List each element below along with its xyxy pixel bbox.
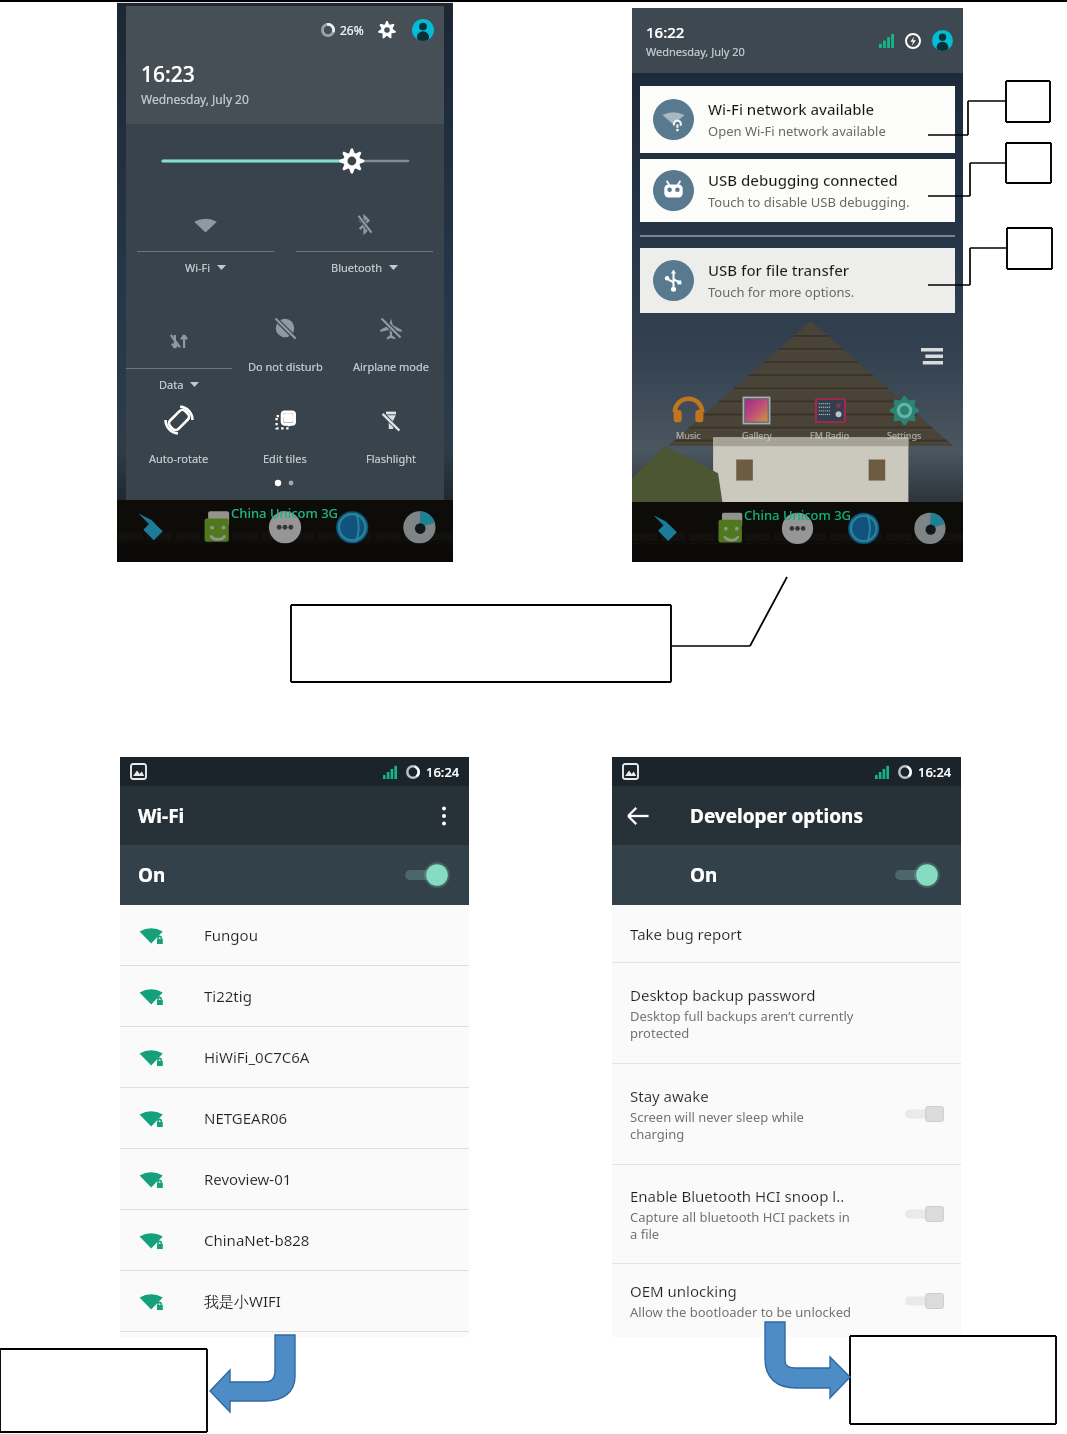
staticText: Take bug report: [630, 924, 742, 944]
staticText: Stay awake: [630, 1086, 709, 1106]
button[interactable]: Stay awake: [612, 1064, 961, 1164]
button[interactable]: Messaging: [185, 500, 252, 562]
button[interactable]: Back: [620, 798, 656, 834]
staticText: Wi-Fi: [185, 260, 211, 275]
staticText: Gallery: [742, 429, 772, 441]
button[interactable]: [895, 863, 939, 887]
button[interactable]: Edit tiles: [232, 397, 338, 489]
button[interactable]: Enable Bluetooth HCI snoop l..: [612, 1165, 961, 1263]
button[interactable]: More options: [425, 797, 463, 835]
button[interactable]: Stay awake toggle: [905, 1103, 945, 1125]
button[interactable]: Take bug report: [612, 905, 961, 962]
button[interactable]: Browser: [319, 500, 386, 562]
staticText: Screen will never sleep while charging: [630, 1108, 804, 1143]
staticText: Desktop backup password: [630, 985, 816, 1005]
button[interactable]: Music: [673, 395, 704, 441]
button[interactable]: Settings: [887, 395, 922, 441]
staticText: Bluetooth: [331, 260, 383, 275]
staticText: Wednesday, July 20: [646, 44, 745, 59]
button[interactable]: Browser: [831, 502, 897, 562]
staticText: 26%: [340, 22, 364, 38]
button[interactable]: Camera: [897, 502, 963, 562]
button[interactable]: Data: [126, 305, 232, 397]
staticText: USB for file transfer: [708, 260, 850, 280]
button[interactable]: FM Radio: [810, 395, 850, 441]
staticText: Settings: [887, 429, 922, 441]
staticText: OEM unlocking: [630, 1281, 737, 1301]
staticText: Touch for more options.: [708, 283, 855, 301]
staticText: On: [690, 862, 718, 888]
staticText: Allow the bootloader to be unlocked: [630, 1303, 852, 1321]
staticText: Do not disturb: [248, 359, 323, 374]
staticText: Desktop full backups aren’t currently pr…: [630, 1007, 854, 1042]
staticText: Capture all bluetooth HCI packets in a f…: [630, 1208, 850, 1243]
staticText: Wi-Fi network available: [708, 99, 875, 119]
button[interactable]: Gallery: [741, 395, 772, 441]
button[interactable]: 我是小WIFI: [120, 1271, 469, 1331]
button[interactable]: Settings: [378, 21, 396, 39]
button[interactable]: All apps: [765, 502, 831, 562]
staticText: Revoview-01: [204, 1169, 292, 1189]
button[interactable]: OEM unlocking: [612, 1264, 961, 1337]
staticText: On: [138, 862, 166, 888]
button[interactable]: OEM unlocking toggle: [905, 1290, 945, 1312]
staticText: Edit tiles: [263, 451, 307, 466]
button[interactable]: [405, 863, 449, 887]
staticText: 16:24: [426, 763, 460, 781]
staticText: FM Radio: [810, 429, 850, 441]
button[interactable]: All apps: [252, 500, 319, 562]
staticText: Flashlight: [366, 451, 416, 466]
staticText: Airplane mode: [353, 359, 429, 374]
staticText: Ti22tig: [204, 986, 252, 1006]
button[interactable]: Brightness: [126, 146, 444, 176]
staticText: Enable Bluetooth HCI snoop l..: [630, 1186, 845, 1206]
button[interactable]: Bluetooth: [285, 203, 444, 303]
button[interactable]: Wi-Fi: [126, 203, 285, 303]
button[interactable]: USB debugging connected: [640, 159, 955, 222]
staticText: 16:23: [141, 60, 195, 89]
staticText: China Unicom 3G: [231, 504, 339, 522]
button[interactable]: NETGEAR06: [120, 1088, 469, 1148]
button[interactable]: Enable Bluetooth HCI snoop l.. toggle: [905, 1203, 945, 1225]
button[interactable]: Revoview-01: [120, 1149, 469, 1209]
staticText: NETGEAR06: [204, 1108, 288, 1128]
button[interactable]: User: [932, 30, 953, 51]
button[interactable]: Phone: [117, 500, 185, 562]
staticText: Auto-rotate: [149, 451, 209, 466]
button[interactable]: Recent apps: [921, 348, 943, 364]
staticText: Music: [676, 429, 701, 441]
staticText: HiWiFi_0C7C6A: [204, 1047, 310, 1067]
button[interactable]: Camera: [386, 500, 453, 562]
button[interactable]: Flashlight: [338, 397, 444, 489]
button[interactable]: Auto-rotate: [126, 397, 232, 489]
staticText: Fungou: [204, 925, 258, 945]
button[interactable]: Do not disturb: [232, 305, 338, 397]
staticText: Developer options: [690, 803, 863, 829]
button[interactable]: Ti22tig: [120, 966, 469, 1026]
button[interactable]: Phone: [632, 502, 699, 562]
staticText: 16:22: [646, 22, 685, 42]
staticText: Wednesday, July 20: [141, 91, 249, 107]
staticText: Open Wi-Fi network available: [708, 122, 886, 140]
button[interactable]: Messaging: [699, 502, 765, 562]
button[interactable]: Airplane mode: [338, 305, 444, 397]
staticText: Wi-Fi: [138, 803, 185, 829]
button[interactable]: USB for file transfer: [640, 248, 955, 313]
staticText: ChinaNet-b828: [204, 1230, 310, 1250]
button[interactable]: Wi-Fi network available: [640, 86, 955, 153]
staticText: China Unicom 3G: [744, 506, 852, 524]
button[interactable]: ChinaNet-b828: [120, 1210, 469, 1270]
staticText: Touch to disable USB debugging.: [708, 193, 910, 211]
button[interactable]: Desktop backup password: [612, 963, 961, 1063]
button[interactable]: Fungou: [120, 905, 469, 965]
button[interactable]: User: [412, 19, 434, 41]
staticText: USB debugging connected: [708, 170, 898, 190]
staticText: 我是小WIFI: [204, 1291, 281, 1311]
staticText: Data: [159, 377, 184, 392]
staticText: 16:24: [918, 763, 952, 781]
button[interactable]: HiWiFi_0C7C6A: [120, 1027, 469, 1087]
